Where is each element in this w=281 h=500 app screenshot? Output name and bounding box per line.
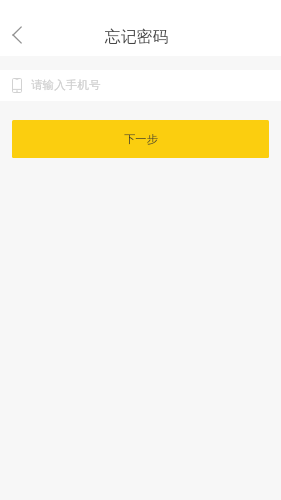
button[interactable]: Back (0, 14, 36, 56)
staticText: 忘记密码 (105, 27, 169, 47)
button[interactable]: 下一步 (12, 120, 269, 158)
button[interactable]: 请输入手机号 (0, 70, 281, 101)
staticText: 请输入手机号 (31, 78, 101, 93)
staticText: 下一步 (124, 132, 158, 146)
